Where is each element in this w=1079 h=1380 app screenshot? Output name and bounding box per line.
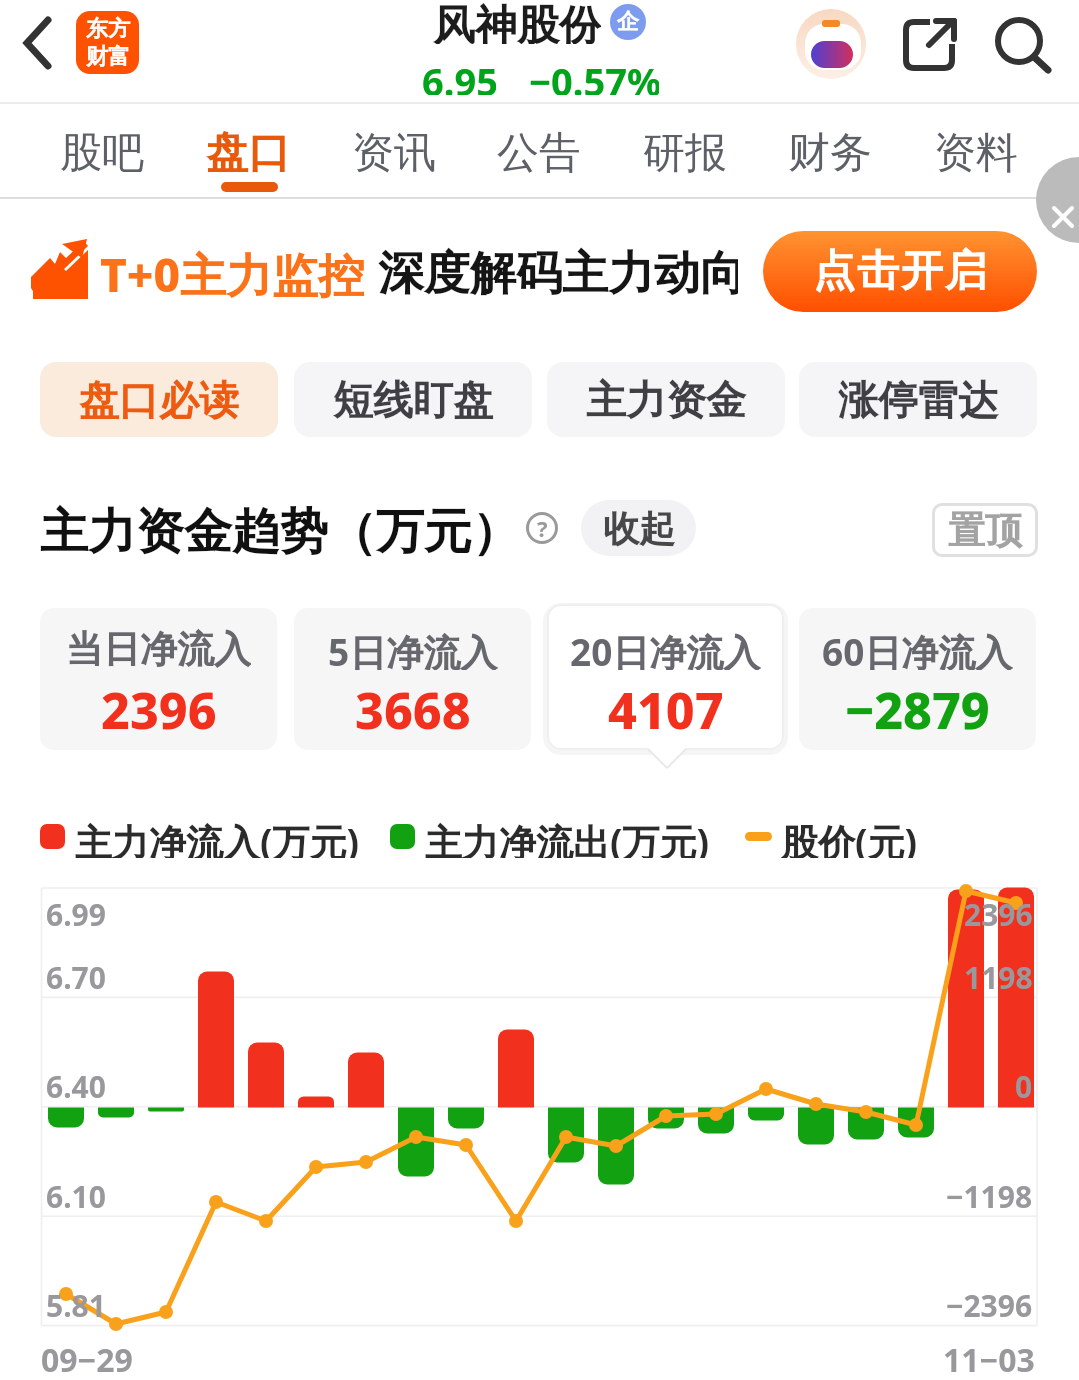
- staticText: 2396: [101, 676, 217, 732]
- staticText: 公告: [497, 127, 581, 180]
- staticText: 资料: [934, 127, 1018, 180]
- button[interactable]: [992, 14, 1056, 76]
- button[interactable]: [799, 608, 1036, 750]
- staticText: 主力净流出(万元): [425, 816, 710, 858]
- staticText: 短线盯盘: [333, 375, 493, 425]
- button[interactable]: 收起: [581, 500, 696, 556]
- button[interactable]: 研报: [625, 118, 745, 188]
- staticText: −2879: [845, 676, 990, 732]
- button[interactable]: 置顶: [932, 503, 1038, 557]
- button[interactable]: 公告: [479, 118, 599, 188]
- staticText: 0: [1015, 1066, 1033, 1100]
- staticText: 6.95: [422, 55, 496, 95]
- staticText: 收起: [603, 506, 675, 551]
- staticText: 企: [617, 8, 639, 36]
- button[interactable]: 涨停雷达: [799, 362, 1037, 437]
- staticText: 风神股份: [433, 0, 601, 44]
- button[interactable]: 主力资金: [547, 362, 785, 437]
- staticText: 当日净流入: [66, 626, 251, 670]
- staticText: 60日净流入: [822, 626, 1013, 670]
- button[interactable]: [898, 14, 962, 76]
- staticText: 财务: [788, 127, 872, 180]
- button[interactable]: 股吧: [42, 118, 162, 188]
- staticText: 11−03: [943, 1338, 1035, 1374]
- staticText: 深度解码主力动向: [378, 245, 738, 303]
- staticText: 点击开启: [812, 245, 988, 298]
- staticText: 主力资金趋势（万元）: [40, 502, 520, 558]
- button[interactable]: 点击开启: [763, 231, 1037, 312]
- staticText: 主力净流入(万元): [75, 816, 360, 858]
- staticText: 6.70: [46, 957, 106, 991]
- staticText: −2396: [946, 1285, 1033, 1319]
- staticText: 1198: [964, 957, 1033, 991]
- button[interactable]: [796, 9, 866, 79]
- button[interactable]: 财务: [770, 118, 890, 188]
- staticText: 4107: [608, 676, 724, 732]
- staticText: 涨停雷达: [838, 375, 998, 425]
- button[interactable]: 盘口必读: [40, 362, 278, 437]
- button[interactable]: [76, 11, 139, 74]
- staticText: 主力资金: [586, 375, 746, 425]
- staticText: 6.99: [46, 894, 106, 928]
- staticText: −1198: [946, 1176, 1033, 1210]
- button[interactable]: 资讯: [334, 118, 454, 188]
- button[interactable]: [547, 604, 784, 750]
- staticText: −0.57%: [529, 55, 659, 95]
- staticText: 东方: [86, 15, 130, 43]
- staticText: 财富: [86, 43, 130, 71]
- staticText: 2396: [964, 894, 1033, 928]
- staticText: 股价(元): [781, 816, 918, 858]
- staticText: 5日净流入: [328, 626, 498, 670]
- button[interactable]: [10, 8, 70, 78]
- button[interactable]: 短线盯盘: [294, 362, 532, 437]
- staticText: 盘口: [206, 127, 290, 180]
- staticText: 3668: [355, 676, 471, 732]
- button[interactable]: 盘口: [188, 118, 308, 188]
- button[interactable]: [294, 608, 531, 750]
- button[interactable]: [40, 608, 277, 750]
- staticText: 6.40: [46, 1066, 106, 1100]
- staticText: 置顶: [948, 507, 1022, 554]
- staticText: 6.10: [46, 1176, 106, 1210]
- staticText: 09−29: [41, 1338, 133, 1374]
- button[interactable]: ?: [526, 512, 558, 544]
- staticText: T+0主力监控: [100, 243, 365, 306]
- staticText: 20日净流入: [570, 626, 761, 670]
- button[interactable]: 资料: [916, 118, 1036, 188]
- staticText: 盘口必读: [79, 375, 239, 425]
- button[interactable]: [1031, 196, 1079, 248]
- staticText: ?: [537, 513, 548, 543]
- staticText: 股吧: [60, 127, 144, 180]
- staticText: 5.81: [46, 1285, 106, 1319]
- staticText: 研报: [643, 127, 727, 180]
- staticText: 资讯: [352, 127, 436, 180]
